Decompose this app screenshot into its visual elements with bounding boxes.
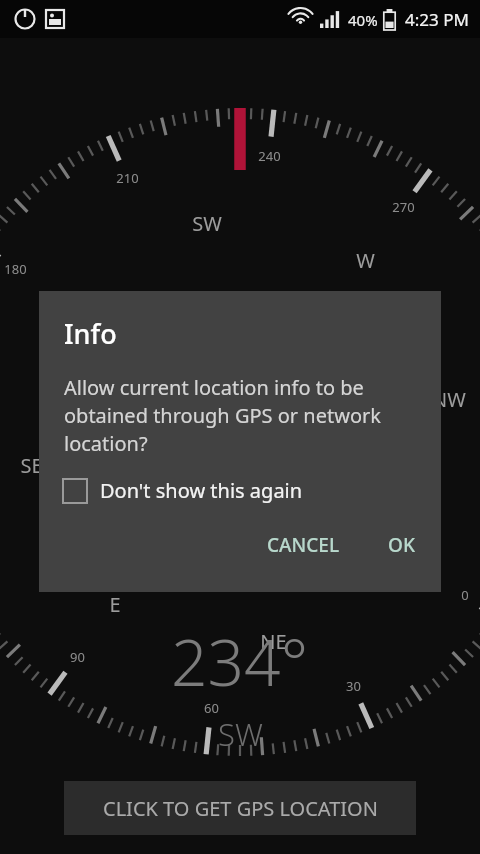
staticText: E: [109, 591, 121, 618]
staticText: N: [404, 544, 420, 571]
staticText: Don't show this again: [100, 477, 303, 504]
staticText: 270: [392, 198, 415, 216]
staticText: 180: [4, 260, 27, 278]
staticText: SW: [192, 210, 222, 237]
staticText: 234°: [171, 618, 309, 705]
staticText: 60: [204, 699, 219, 717]
staticText: SW: [218, 713, 263, 755]
staticText: CLICK TO GET GPS LOCATION: [103, 795, 378, 822]
button[interactable]: OK: [378, 522, 425, 568]
button[interactable]: CLICK TO GET GPS LOCATION: [64, 781, 416, 835]
staticText: OK: [388, 532, 415, 558]
staticText: NW: [432, 386, 466, 413]
staticText: 210: [116, 169, 139, 187]
button[interactable]: Don't show this again: [62, 477, 303, 504]
staticText: NE: [260, 628, 287, 655]
staticText: W: [356, 247, 375, 274]
staticText: Info: [64, 315, 117, 352]
staticText: 90: [70, 648, 85, 666]
button[interactable]: CANCEL: [257, 522, 350, 568]
staticText: 0: [461, 586, 469, 604]
staticText: CANCEL: [267, 532, 340, 558]
staticText: 30: [346, 677, 361, 695]
staticText: 40%: [348, 10, 378, 30]
staticText: Allow current location info to be obtain…: [64, 374, 421, 457]
staticText: 240: [258, 147, 281, 165]
staticText: SE: [20, 452, 43, 479]
staticText: 4:23 PM: [405, 8, 469, 31]
